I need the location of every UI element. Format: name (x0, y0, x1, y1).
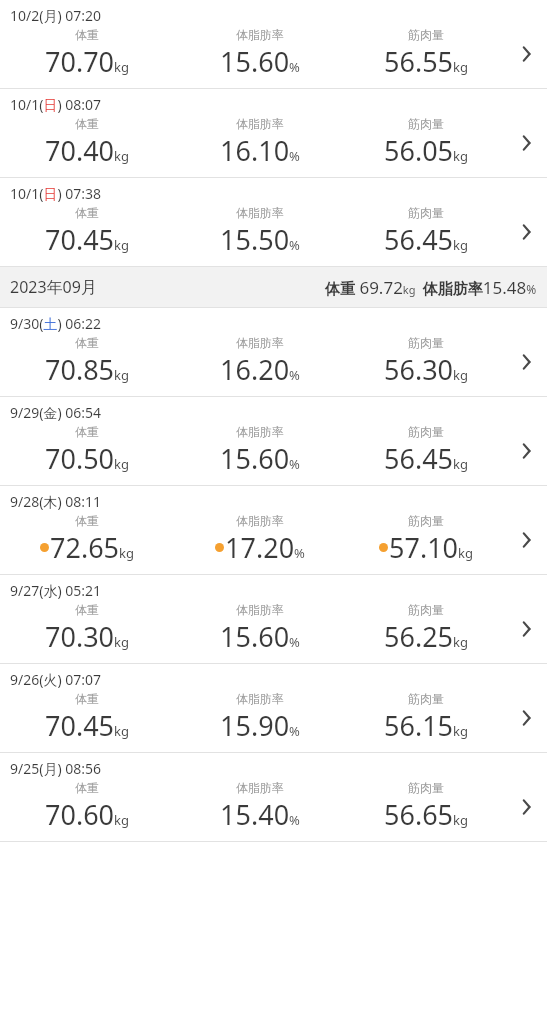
staticText: 9/27(水) 05:21 (10, 581, 102, 600)
button[interactable]: 9/30(土) 06:22 (0, 308, 547, 397)
other: 詳細を開く (515, 221, 537, 243)
staticText: 17.20% (225, 529, 305, 566)
staticText: 72.65kg (50, 529, 134, 566)
other: 詳細を開く (515, 529, 537, 551)
button[interactable]: 9/27(水) 05:21 (0, 575, 547, 664)
staticText: 56.30kg (384, 351, 468, 388)
staticText: 筋肉量 (408, 602, 444, 617)
staticText: 56.25kg (384, 618, 468, 655)
staticText: 体重 (75, 691, 99, 706)
staticText: 体重 (75, 424, 99, 439)
other: 詳細を開く (515, 43, 537, 65)
staticText: 70.45kg (45, 221, 129, 258)
staticText: 体脂肪率 (236, 27, 284, 42)
other: 詳細を開く (515, 796, 537, 818)
staticText: 70.30kg (45, 618, 129, 655)
staticText: 9/28(木) 08:11 (10, 492, 102, 511)
staticText: 体脂肪率 (236, 116, 284, 131)
staticText: 15.40% (220, 796, 300, 833)
staticText: 体脂肪率 (236, 602, 284, 617)
staticText: 体脂肪率 (236, 691, 284, 706)
staticText: 15.90% (220, 707, 300, 744)
staticText: 57.10kg (389, 529, 473, 566)
staticText: 体重 (75, 602, 99, 617)
staticText: 16.20% (220, 351, 300, 388)
staticText: 体脂肪率 (236, 513, 284, 528)
staticText: 筋肉量 (408, 424, 444, 439)
staticText: 70.70kg (45, 43, 129, 80)
staticText: 15.60% (220, 618, 300, 655)
button[interactable]: 9/25(月) 08:56 (0, 753, 547, 842)
staticText: 10/1(日) 07:38 (10, 184, 102, 203)
staticText: 体重 (75, 335, 99, 350)
staticText: 10/1(日) 08:07 (10, 95, 102, 114)
staticText: 10/2(月) 07:20 (10, 6, 102, 25)
staticText: 15.60% (220, 440, 300, 477)
other: 詳細を開く (515, 440, 537, 462)
staticText: 56.45kg (384, 221, 468, 258)
staticText: 56.15kg (384, 707, 468, 744)
staticText: 70.40kg (45, 132, 129, 169)
staticText: 体脂肪率 (236, 780, 284, 795)
staticText: 56.05kg (384, 132, 468, 169)
staticText: 体重 (75, 116, 99, 131)
staticText: 筋肉量 (408, 335, 444, 350)
other: 詳細を開く (515, 707, 537, 729)
staticText: 体重 (75, 205, 99, 220)
staticText: 70.50kg (45, 440, 129, 477)
staticText: 筋肉量 (408, 205, 444, 220)
staticText: 筋肉量 (408, 691, 444, 706)
button[interactable]: 9/28(木) 08:11 (0, 486, 547, 575)
staticText: 16.10% (220, 132, 300, 169)
staticText: 体脂肪率 (236, 335, 284, 350)
staticText: 体重 (75, 27, 99, 42)
button[interactable]: 10/2(月) 07:20 (0, 0, 547, 89)
staticText: 15.60% (220, 43, 300, 80)
other: 詳細を開く (515, 132, 537, 154)
staticText: 筋肉量 (408, 116, 444, 131)
staticText: 56.45kg (384, 440, 468, 477)
other: 詳細を開く (515, 351, 537, 373)
staticText: 9/29(金) 06:54 (10, 403, 102, 422)
staticText: 70.45kg (45, 707, 129, 744)
staticText: 体脂肪率 (236, 205, 284, 220)
staticText: 56.65kg (384, 796, 468, 833)
button[interactable]: 9/29(金) 06:54 (0, 397, 547, 486)
staticText: 体重 (75, 513, 99, 528)
staticText: 筋肉量 (408, 27, 444, 42)
staticText: 体重 69.72kg 体脂肪率15.48% (325, 276, 537, 299)
button[interactable]: 10/1(日) 08:07 (0, 89, 547, 178)
staticText: 70.85kg (45, 351, 129, 388)
staticText: 体脂肪率 (236, 424, 284, 439)
staticText: 9/25(月) 08:56 (10, 759, 102, 778)
other: 詳細を開く (515, 618, 537, 640)
staticText: 15.50% (220, 221, 300, 258)
staticText: 筋肉量 (408, 780, 444, 795)
staticText: 70.60kg (45, 796, 129, 833)
staticText: 体重 (75, 780, 99, 795)
staticText: 2023年09月 (10, 276, 97, 298)
staticText: 56.55kg (384, 43, 468, 80)
button[interactable]: 10/1(日) 07:38 (0, 178, 547, 267)
staticText: 9/30(土) 06:22 (10, 314, 102, 333)
button[interactable]: 9/26(火) 07:07 (0, 664, 547, 753)
staticText: 9/26(火) 07:07 (10, 670, 102, 689)
staticText: 筋肉量 (408, 513, 444, 528)
